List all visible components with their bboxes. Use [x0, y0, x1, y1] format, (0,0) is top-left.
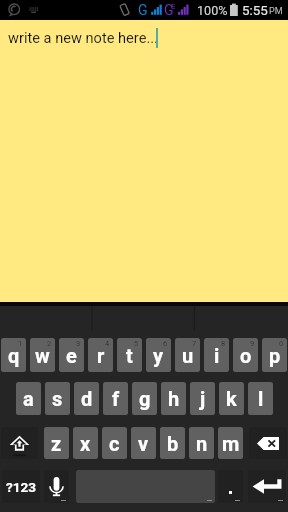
staticText: 2	[47, 339, 52, 348]
staticText: PM	[269, 6, 283, 17]
staticText: 6	[163, 339, 168, 348]
staticText: l	[258, 387, 264, 410]
button[interactable]: g	[132, 382, 157, 415]
button[interactable]: o	[233, 338, 258, 372]
button[interactable]: m	[218, 427, 243, 459]
staticText: o	[240, 344, 252, 367]
staticText: G	[164, 2, 174, 18]
staticText: q	[8, 344, 20, 367]
staticText: w	[35, 344, 50, 367]
staticText: 5	[134, 339, 139, 348]
button[interactable]: p	[262, 338, 287, 372]
button[interactable]: n	[189, 427, 214, 459]
staticText: 7	[192, 339, 197, 348]
staticText: m	[222, 432, 240, 455]
staticText: ?123	[6, 479, 37, 495]
staticText: 9	[250, 339, 255, 348]
button[interactable]: e	[59, 338, 84, 372]
button[interactable]: f	[103, 382, 128, 415]
staticText: 0	[279, 339, 284, 348]
button[interactable]: Enter	[248, 470, 286, 503]
staticText: 8	[221, 339, 226, 348]
button[interactable]: w	[30, 338, 55, 372]
staticText: write a new note here...	[8, 29, 158, 46]
staticText: h	[168, 387, 180, 410]
button[interactable]: u	[175, 338, 200, 372]
button[interactable]: Shift	[1, 427, 38, 459]
staticText: n	[196, 432, 208, 455]
staticText: e	[66, 344, 77, 367]
button[interactable]: q	[1, 338, 26, 372]
staticText: c	[109, 432, 120, 455]
staticText: d	[81, 387, 93, 410]
staticText: i	[214, 344, 220, 367]
button[interactable]: ?123	[2, 470, 40, 503]
button[interactable]: v	[131, 427, 156, 459]
staticText: G	[138, 2, 148, 18]
staticText: p	[269, 344, 281, 367]
button[interactable]: c	[102, 427, 127, 459]
staticText: 1	[18, 339, 23, 348]
button[interactable]: d	[74, 382, 99, 415]
button[interactable]: y	[146, 338, 171, 372]
button[interactable]: Voice input	[44, 470, 69, 503]
staticText: v	[138, 432, 149, 455]
staticText: g	[139, 387, 151, 410]
staticText: 5:55	[242, 3, 268, 19]
staticText: x	[80, 432, 91, 455]
button[interactable]: Backspace	[249, 427, 287, 459]
staticText: f	[112, 387, 120, 410]
staticText: a	[23, 387, 34, 410]
staticText: t	[126, 344, 133, 367]
button[interactable]	[218, 470, 243, 503]
staticText: 3	[76, 339, 81, 348]
button[interactable]: a	[16, 382, 41, 415]
button[interactable]: z	[44, 427, 69, 459]
staticText: y	[153, 344, 164, 367]
staticText: u	[182, 344, 194, 367]
button[interactable]: h	[161, 382, 186, 415]
button[interactable]: l	[248, 382, 273, 415]
staticText: 100%	[197, 3, 228, 18]
button[interactable]: s	[45, 382, 70, 415]
button[interactable]: k	[219, 382, 244, 415]
staticText: E	[171, 2, 176, 11]
staticText: j	[200, 387, 206, 410]
button[interactable]: t	[117, 338, 142, 372]
staticText: s	[52, 387, 63, 410]
button[interactable]: x	[73, 427, 98, 459]
button[interactable]: j	[190, 382, 215, 415]
button[interactable]: i	[204, 338, 229, 372]
staticText: b	[167, 432, 179, 455]
staticText: r	[97, 344, 105, 367]
staticText: k	[226, 387, 237, 410]
staticText: 4	[105, 339, 110, 348]
button[interactable]: r	[88, 338, 113, 372]
button[interactable]: b	[160, 427, 185, 459]
staticText: z	[51, 432, 62, 455]
